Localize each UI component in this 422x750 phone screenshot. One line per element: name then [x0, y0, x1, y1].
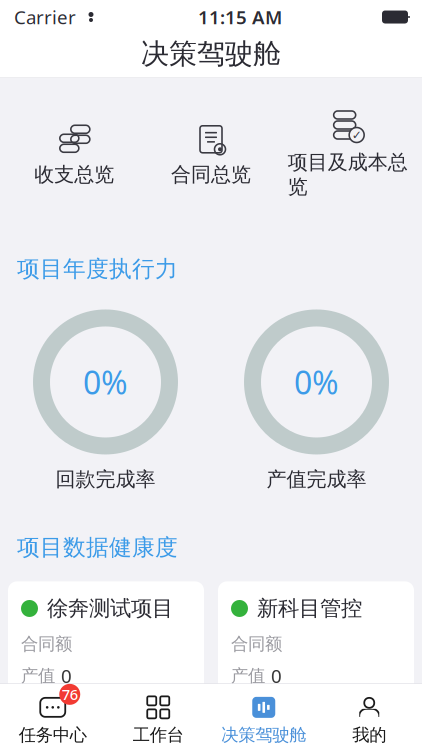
- staticText: 我的: [352, 724, 386, 746]
- staticText: 项目及成本总览: [288, 150, 408, 199]
- staticText: 产值: [231, 665, 265, 686]
- staticText: 合同额: [231, 633, 282, 655]
- staticText: 决策驾驶舱: [141, 37, 281, 71]
- button[interactable]: 徐奔测试项目: [8, 581, 204, 731]
- button[interactable]: 合同总览: [143, 120, 279, 191]
- staticText: 工作台: [133, 724, 184, 746]
- button[interactable]: ✓: [279, 108, 416, 203]
- staticText: 产值: [21, 665, 55, 686]
- staticText: 回款完成率: [55, 467, 155, 492]
- button[interactable]: 决策驾驶舱: [211, 688, 316, 746]
- staticText: 0%: [83, 361, 128, 403]
- staticText: 0: [271, 663, 282, 688]
- staticText: 新科目管控: [257, 595, 362, 622]
- button[interactable]: 我的: [316, 688, 422, 746]
- staticText: 项目年度执行力: [17, 255, 178, 283]
- button[interactable]: 工作台: [105, 688, 211, 746]
- staticText: 产值完成率: [266, 467, 366, 492]
- staticText: 0: [61, 663, 72, 688]
- staticText: 任务中心: [19, 724, 87, 746]
- staticText: ✓: [352, 128, 362, 142]
- button[interactable]: 新科目管控: [218, 581, 414, 731]
- staticText: 决策驾驶舱: [221, 724, 306, 746]
- staticText: 徐奔测试项目: [47, 595, 173, 622]
- staticText: Carrier: [14, 5, 76, 29]
- staticText: 收支总览: [34, 162, 114, 187]
- button[interactable]: 76: [0, 688, 105, 746]
- staticText: 合同执行比 (%): [21, 695, 106, 739]
- staticText: 合同执行比 (%): [231, 695, 316, 739]
- staticText: 76: [62, 685, 78, 704]
- staticText: 合同额: [21, 633, 72, 655]
- staticText: 项目数据健康度: [17, 533, 178, 561]
- staticText: 0%: [294, 361, 339, 403]
- staticText: 0%: [112, 705, 139, 730]
- button[interactable]: 收支总览: [6, 120, 143, 191]
- staticText: 11:15 AM: [198, 5, 282, 29]
- staticText: 合同总览: [171, 162, 251, 187]
